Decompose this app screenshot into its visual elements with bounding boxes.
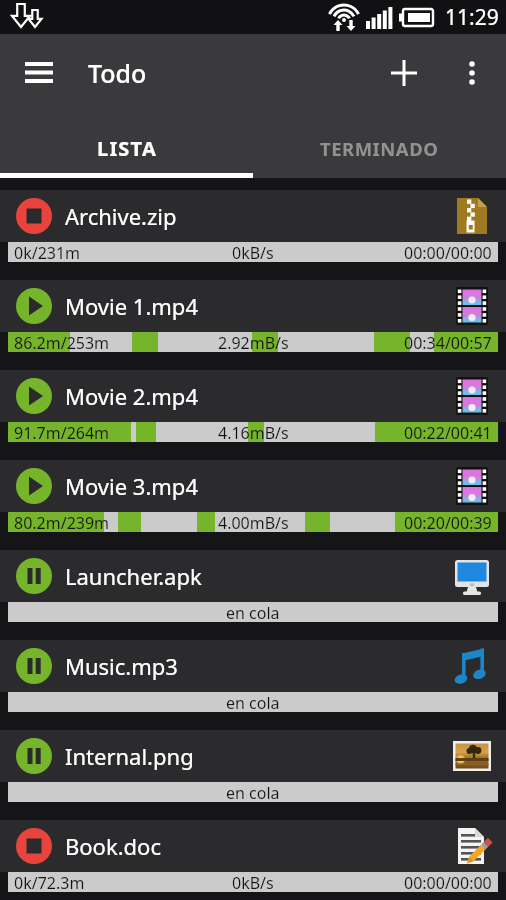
button[interactable]: Internal.png: [0, 730, 506, 820]
button[interactable]: LISTA: [0, 112, 253, 178]
staticText: 0k/231m: [14, 242, 81, 262]
staticText: en cola: [226, 782, 280, 802]
staticText: 80.2m/239m: [14, 512, 110, 532]
button[interactable]: Book.doc: [0, 820, 506, 900]
staticText: 0kB/s: [232, 872, 274, 892]
button[interactable]: Movie 2.mp4: [0, 370, 506, 460]
button[interactable]: Archive.zip: [0, 190, 506, 280]
button[interactable]: [0, 34, 78, 112]
button[interactable]: Movie 1.mp4: [0, 280, 506, 370]
staticText: 91.7m/264m: [14, 422, 110, 442]
staticText: 00:00/00:00: [404, 242, 492, 262]
button[interactable]: [438, 34, 506, 112]
staticText: Launcher.apk: [65, 561, 202, 591]
staticText: Movie 2.mp4: [65, 381, 198, 411]
staticText: TERMINADO: [320, 136, 439, 161]
button[interactable]: TERMINADO: [253, 112, 506, 178]
staticText: 00:00/00:00: [404, 872, 492, 892]
staticText: 00:22/00:41: [404, 422, 492, 442]
staticText: Archive.zip: [65, 201, 177, 231]
button[interactable]: Movie 3.mp4: [0, 460, 506, 550]
staticText: 2.92mB/s: [218, 332, 289, 352]
staticText: 4.16mB/s: [218, 422, 289, 442]
staticText: Book.doc: [65, 831, 161, 861]
staticText: 0kB/s: [232, 242, 274, 262]
staticText: Internal.png: [65, 741, 194, 771]
staticText: 11:29: [445, 3, 499, 32]
staticText: Movie 1.mp4: [65, 291, 198, 321]
staticText: Movie 3.mp4: [65, 471, 198, 501]
staticText: 4.00mB/s: [218, 512, 289, 532]
staticText: en cola: [226, 602, 280, 622]
staticText: 86.2m/253m: [14, 332, 110, 352]
staticText: 00:20/00:39: [404, 512, 492, 532]
staticText: Music.mp3: [65, 651, 178, 681]
staticText: LISTA: [97, 135, 157, 162]
button[interactable]: Launcher.apk: [0, 550, 506, 640]
button[interactable]: Music.mp3: [0, 640, 506, 730]
staticText: 0k/72.3m: [14, 872, 85, 892]
button[interactable]: [370, 34, 438, 112]
staticText: en cola: [226, 692, 280, 712]
staticText: Todo: [88, 56, 147, 90]
staticText: 00:34/00:57: [404, 332, 492, 352]
